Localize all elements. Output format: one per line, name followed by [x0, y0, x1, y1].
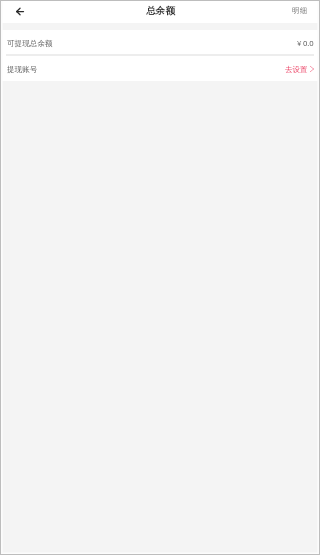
staticText: 明细: [292, 6, 308, 15]
button[interactable]: 提现账号: [0, 56, 320, 81]
button[interactable]: 明细: [282, 2, 320, 21]
staticText: 去设置: [285, 65, 308, 74]
button[interactable]: 可提现总余额: [0, 30, 320, 54]
staticText: 总余额: [146, 5, 175, 17]
button[interactable]: Back: [6, 0, 34, 23]
staticText: 提现账号: [7, 65, 38, 75]
staticText: ¥ 0.0: [297, 38, 314, 48]
staticText: 可提现总余额: [7, 39, 53, 49]
